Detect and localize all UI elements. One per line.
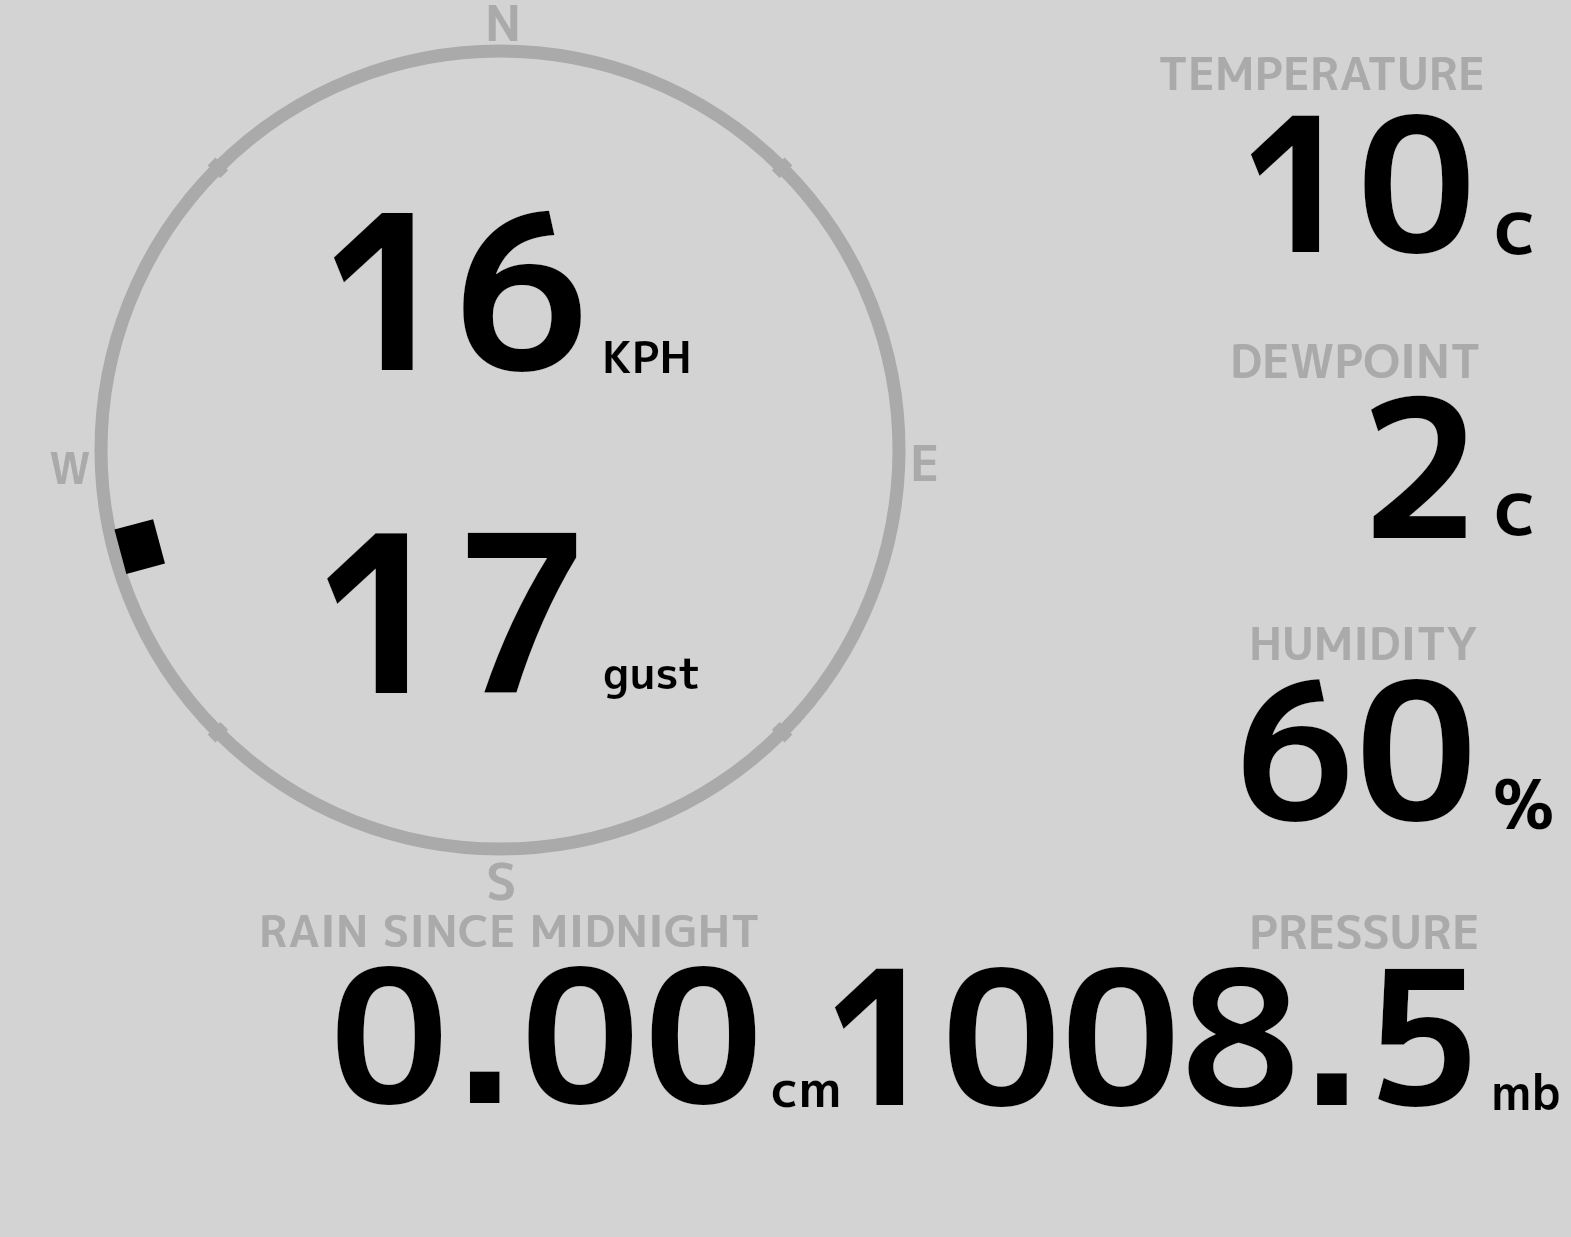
staticText: W	[49, 438, 91, 498]
staticText: mb	[1491, 1058, 1561, 1125]
staticText: 17	[312, 459, 592, 763]
staticText: 1008.5	[822, 905, 1484, 1164]
staticText: KPH	[602, 326, 692, 387]
button[interactable]: Temperature	[1000, 20, 1560, 280]
staticText: 2	[1358, 332, 1481, 600]
staticText: S	[486, 846, 517, 916]
staticText: DEWPOINT	[1230, 329, 1481, 393]
staticText: N	[485, 0, 522, 56]
staticText: TEMPERATURE	[1158, 42, 1486, 105]
staticText: E	[910, 428, 940, 496]
staticText: gust	[603, 642, 702, 703]
button[interactable]: Rain since midnight	[240, 880, 860, 1130]
staticText: 0.00	[330, 904, 768, 1162]
staticText: 16	[319, 139, 587, 439]
staticText: PRESSURE	[1249, 900, 1480, 964]
button[interactable]: Dewpoint	[1000, 300, 1560, 560]
button[interactable]: Wind direction and speed	[60, 10, 940, 890]
staticText: c	[1494, 450, 1537, 560]
staticText: RAIN SINCE MIDNIGHT	[259, 900, 761, 961]
staticText: 10	[1238, 52, 1477, 311]
staticText: c	[1494, 169, 1537, 279]
staticText: 60	[1234, 616, 1478, 881]
button[interactable]: Humidity	[1000, 585, 1560, 845]
button[interactable]: Pressure	[1000, 880, 1560, 1130]
staticText: %	[1493, 756, 1555, 851]
staticText: cm	[771, 1052, 842, 1123]
staticText: HUMIDITY	[1249, 612, 1478, 675]
